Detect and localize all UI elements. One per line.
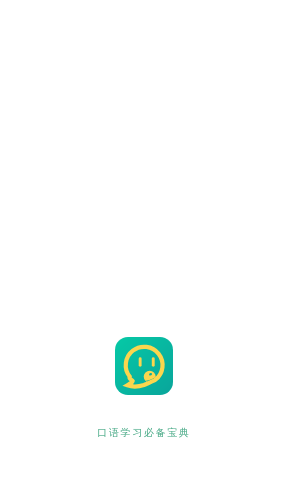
button[interactable]: 口语学习必备宝典 app icon — [115, 337, 173, 395]
staticText: 口语学习必备宝典 — [97, 426, 191, 439]
